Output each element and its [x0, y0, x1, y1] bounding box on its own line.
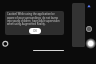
button[interactable]: OK — [29, 28, 41, 34]
staticText: OK — [33, 29, 38, 33]
staticText: Caution! While using the application be … — [7, 12, 62, 25]
other: Play — [86, 3, 92, 9]
other: Refresh — [1, 39, 10, 48]
other: Record — [85, 25, 93, 33]
